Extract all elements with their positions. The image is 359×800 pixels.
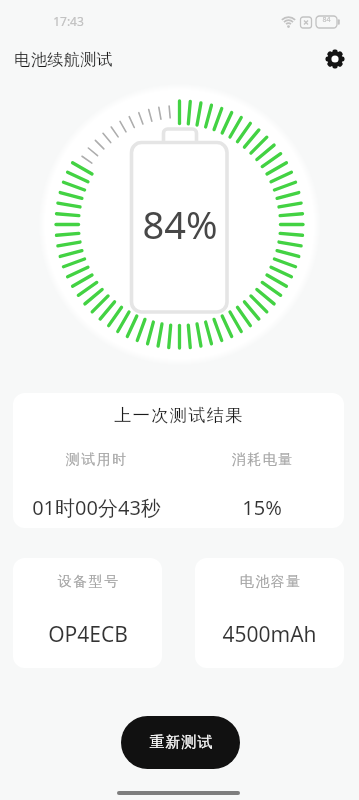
staticText: OP4ECB — [48, 620, 128, 646]
staticText: 84% — [142, 198, 218, 242]
staticText: 17:43 — [53, 13, 84, 29]
staticText: 4500mAh — [222, 620, 317, 646]
staticText: 电池续航测试 — [14, 50, 113, 70]
staticText: 测试用时 — [65, 451, 127, 469]
staticText: 设备型号 — [57, 573, 119, 591]
staticText: 电池容量 — [239, 573, 301, 591]
staticText: 上一次测试结果 — [114, 405, 244, 426]
staticText: 01时00分43秒 — [32, 494, 161, 518]
staticText: 84 — [322, 15, 331, 25]
staticText: 重新测试 — [149, 733, 213, 752]
staticText: 15% — [242, 494, 282, 518]
staticText: 消耗电量 — [231, 451, 293, 469]
